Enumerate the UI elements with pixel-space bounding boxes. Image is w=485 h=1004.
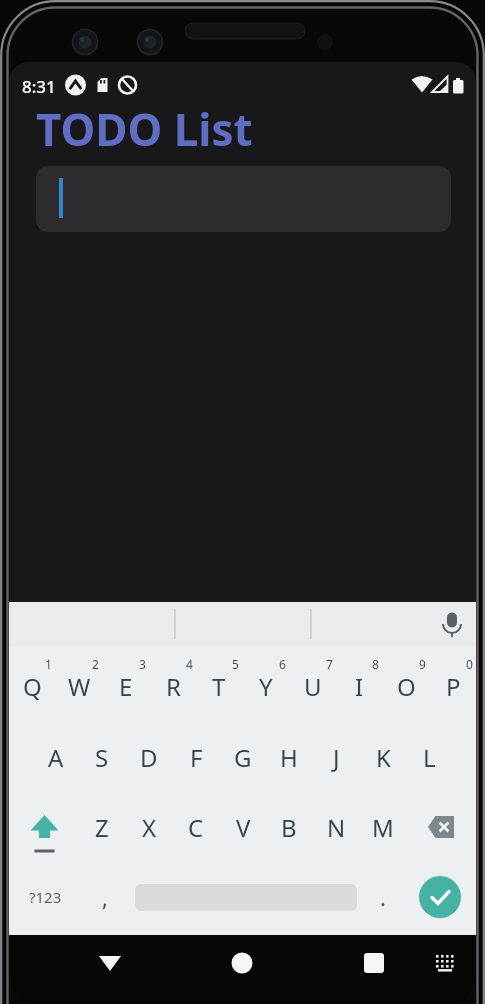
staticText: M bbox=[372, 811, 394, 844]
button[interactable]: N bbox=[313, 800, 359, 854]
button[interactable]: , bbox=[82, 870, 128, 924]
button[interactable]: . bbox=[360, 870, 406, 924]
button[interactable] bbox=[220, 941, 264, 985]
button[interactable] bbox=[20, 803, 70, 851]
button[interactable]: ?123 bbox=[19, 870, 71, 924]
button[interactable]: L bbox=[406, 730, 452, 784]
button[interactable]: C bbox=[173, 800, 219, 854]
staticText: 8:31 bbox=[22, 75, 56, 98]
button[interactable]: E bbox=[103, 659, 149, 713]
button[interactable]: H bbox=[266, 730, 312, 784]
staticText: I bbox=[355, 670, 364, 703]
button[interactable]: K bbox=[360, 730, 406, 784]
staticText: 1 bbox=[45, 656, 52, 672]
button[interactable]: P bbox=[430, 659, 476, 713]
staticText: C bbox=[188, 811, 204, 844]
staticText: E bbox=[119, 670, 133, 703]
button[interactable] bbox=[416, 873, 464, 921]
staticText: Z bbox=[95, 811, 109, 844]
staticText: O bbox=[397, 670, 416, 703]
staticText: 2 bbox=[92, 656, 99, 672]
button[interactable] bbox=[352, 941, 396, 985]
staticText: 7 bbox=[326, 656, 333, 672]
staticText: P bbox=[446, 670, 461, 703]
button[interactable]: F bbox=[173, 730, 219, 784]
staticText: X bbox=[142, 811, 157, 844]
button[interactable]: W bbox=[56, 659, 102, 713]
button[interactable]: U bbox=[290, 659, 336, 713]
staticText: 5 bbox=[232, 656, 239, 672]
staticText: S bbox=[95, 741, 109, 774]
staticText: T bbox=[212, 670, 226, 703]
button[interactable]: O bbox=[383, 659, 429, 713]
button[interactable]: Q bbox=[9, 659, 55, 713]
button[interactable] bbox=[418, 803, 468, 851]
staticText: N bbox=[327, 811, 346, 844]
staticText: W bbox=[68, 670, 91, 703]
staticText: Q bbox=[23, 670, 42, 703]
button[interactable] bbox=[88, 941, 132, 985]
button[interactable]: S bbox=[79, 730, 125, 784]
staticText: R bbox=[166, 670, 181, 703]
button[interactable] bbox=[36, 166, 451, 232]
staticText: 9 bbox=[419, 656, 426, 672]
button[interactable]: M bbox=[360, 800, 406, 854]
button[interactable]: R bbox=[150, 659, 196, 713]
button[interactable]: T bbox=[196, 659, 242, 713]
staticText: K bbox=[376, 741, 391, 774]
staticText: 6 bbox=[279, 656, 286, 672]
button[interactable]: Z bbox=[79, 800, 125, 854]
staticText: , bbox=[102, 882, 108, 912]
staticText: D bbox=[140, 741, 158, 774]
button[interactable]: D bbox=[126, 730, 172, 784]
staticText: V bbox=[236, 811, 251, 844]
button[interactable]: V bbox=[220, 800, 266, 854]
button[interactable]: X bbox=[126, 800, 172, 854]
staticText: . bbox=[380, 882, 386, 912]
staticText: Y bbox=[259, 670, 273, 703]
button[interactable]: I bbox=[336, 659, 382, 713]
staticText: J bbox=[333, 741, 340, 774]
staticText: 8 bbox=[372, 656, 379, 672]
staticText: U bbox=[304, 670, 322, 703]
staticText: 4 bbox=[186, 656, 193, 672]
button[interactable]: Y bbox=[243, 659, 289, 713]
staticText: ?123 bbox=[29, 887, 62, 907]
button[interactable] bbox=[429, 947, 461, 979]
staticText: TODO List bbox=[36, 99, 253, 159]
button[interactable]: G bbox=[220, 730, 266, 784]
button[interactable]: J bbox=[313, 730, 359, 784]
button[interactable]: B bbox=[266, 800, 312, 854]
staticText: L bbox=[423, 741, 436, 774]
staticText: F bbox=[190, 741, 203, 774]
staticText: 0 bbox=[466, 656, 473, 672]
staticText: A bbox=[48, 741, 64, 774]
staticText: G bbox=[234, 741, 252, 774]
staticText: 3 bbox=[139, 656, 146, 672]
staticText: B bbox=[281, 811, 297, 844]
button[interactable]: A bbox=[33, 730, 79, 784]
staticText: H bbox=[280, 741, 298, 774]
